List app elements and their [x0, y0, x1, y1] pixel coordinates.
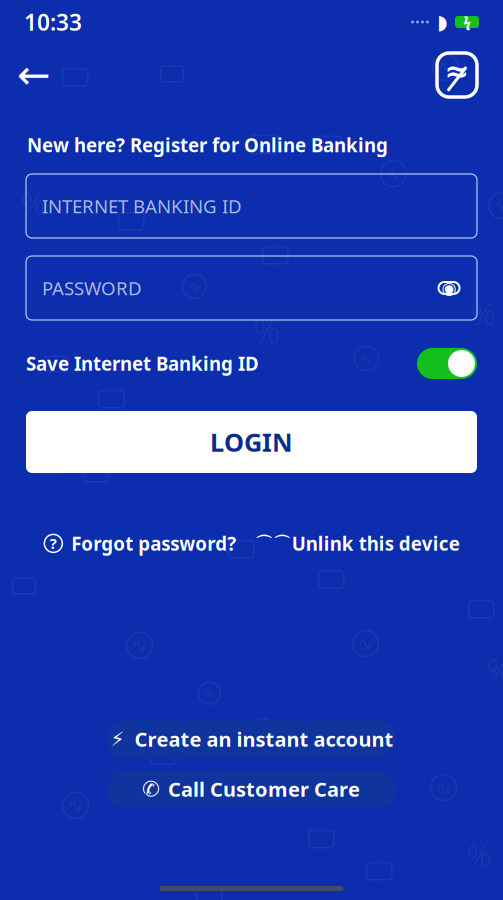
staticText: ∿ — [438, 58, 453, 77]
staticText: ∿ — [494, 196, 503, 215]
staticText: ◉ — [441, 278, 456, 298]
button[interactable]: Save Internet Banking ID — [417, 348, 477, 379]
staticText: ← — [17, 52, 51, 98]
button[interactable]: ✆ — [107, 770, 395, 808]
button[interactable]: INTERNET BANKING ID — [26, 174, 477, 238]
staticText: New here? Register for Online Banking — [27, 133, 388, 157]
staticText: ∿ — [386, 164, 401, 183]
staticText: PASSWORD — [42, 276, 142, 300]
staticText: ∿ — [358, 634, 373, 653]
button[interactable]: PASSWORD — [26, 256, 477, 320]
staticText: INTERNET BANKING ID — [42, 194, 242, 218]
staticText: % — [21, 183, 46, 223]
button[interactable]: ⌒ — [262, 525, 460, 562]
staticText: ∿ — [256, 721, 269, 739]
staticText: % — [253, 308, 280, 353]
staticText: Forgot password? — [71, 531, 236, 556]
staticText: ∿ — [203, 685, 215, 701]
staticText: ≈ — [444, 54, 469, 88]
staticText: Unlink this device — [292, 531, 460, 556]
staticText: % — [467, 835, 492, 875]
staticText: ∿ — [436, 778, 451, 797]
staticText: Call Customer Care — [168, 776, 360, 802]
staticText: ⌒ — [273, 533, 290, 554]
staticText: Create an instant account — [134, 726, 393, 752]
staticText: ∿ — [132, 636, 147, 655]
button[interactable]: Back — [12, 53, 56, 97]
button[interactable]: ? — [43, 525, 236, 562]
staticText: ◗ — [437, 11, 448, 33]
staticText: 10:33 — [24, 7, 82, 37]
staticText: ∿ — [188, 277, 201, 295]
button[interactable]: New here? Register for Online Banking — [0, 128, 503, 162]
staticText: % — [471, 293, 496, 333]
button[interactable]: LOGIN — [26, 411, 477, 473]
staticText: ϟ — [463, 13, 470, 31]
staticText: ✆ — [142, 777, 160, 801]
button[interactable]: ⚡︎ — [107, 720, 395, 758]
staticText: ∿ — [68, 796, 83, 815]
staticText: LOGIN — [210, 425, 293, 459]
staticText: ? — [50, 534, 57, 553]
staticText: Save Internet Banking ID — [26, 351, 259, 376]
staticText: ∿ — [360, 349, 373, 367]
staticText: % — [487, 649, 503, 689]
staticText: ⚡︎ — [110, 728, 124, 750]
staticText: ⌒ — [255, 533, 272, 554]
